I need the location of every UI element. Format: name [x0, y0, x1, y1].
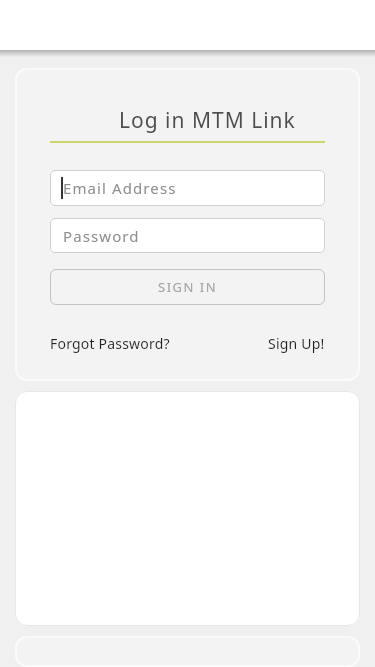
button[interactable]: Password — [50, 218, 325, 253]
staticText: Log in MTM Link — [119, 106, 296, 135]
button[interactable]: Email Address — [50, 170, 325, 206]
button[interactable]: Forgot Password? — [50, 334, 170, 353]
staticText: Email Address — [63, 178, 177, 198]
button[interactable]: Sign Up! — [268, 334, 325, 353]
button[interactable]: SIGN IN — [50, 269, 325, 305]
staticText: SIGN IN — [158, 278, 218, 296]
staticText: Password — [63, 226, 140, 246]
